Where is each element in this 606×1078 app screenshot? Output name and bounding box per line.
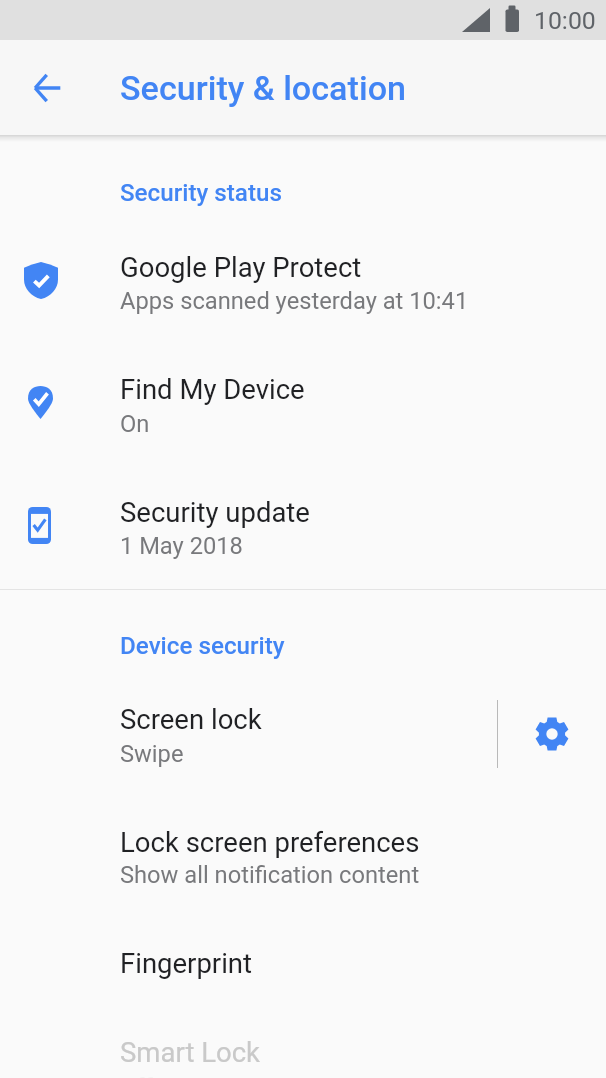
staticText: Security status bbox=[120, 179, 282, 207]
button[interactable] bbox=[0, 352, 606, 475]
button[interactable] bbox=[0, 681, 497, 803]
button[interactable] bbox=[0, 925, 606, 1014]
staticText: Show all notification content bbox=[120, 861, 420, 889]
button[interactable]: Navigate up bbox=[16, 57, 77, 118]
staticText: Apps scanned yesterday at 10:41 bbox=[120, 287, 469, 315]
button[interactable] bbox=[0, 475, 606, 589]
staticText: Lock screen preferences bbox=[120, 826, 420, 858]
button[interactable] bbox=[0, 803, 606, 925]
staticText: Fingerprint bbox=[120, 947, 253, 979]
staticText: 10:00 bbox=[534, 6, 596, 35]
staticText: Google Play Protect bbox=[120, 251, 362, 283]
button[interactable] bbox=[0, 1014, 606, 1078]
staticText: 1 May 2018 bbox=[120, 532, 243, 560]
staticText: Security & location bbox=[120, 68, 407, 108]
button[interactable]: Screen lock settings bbox=[498, 703, 606, 768]
staticText: On bbox=[120, 410, 150, 438]
staticText: Screen lock bbox=[120, 703, 262, 735]
staticText: Device security bbox=[120, 632, 285, 660]
staticText: 10:00 bbox=[534, 6, 596, 35]
staticText: Security update bbox=[120, 496, 310, 528]
staticText: Find My Device bbox=[120, 373, 305, 405]
staticText: Smart Lock bbox=[120, 1036, 261, 1068]
button[interactable] bbox=[0, 229, 606, 352]
staticText: Swipe bbox=[120, 740, 184, 768]
